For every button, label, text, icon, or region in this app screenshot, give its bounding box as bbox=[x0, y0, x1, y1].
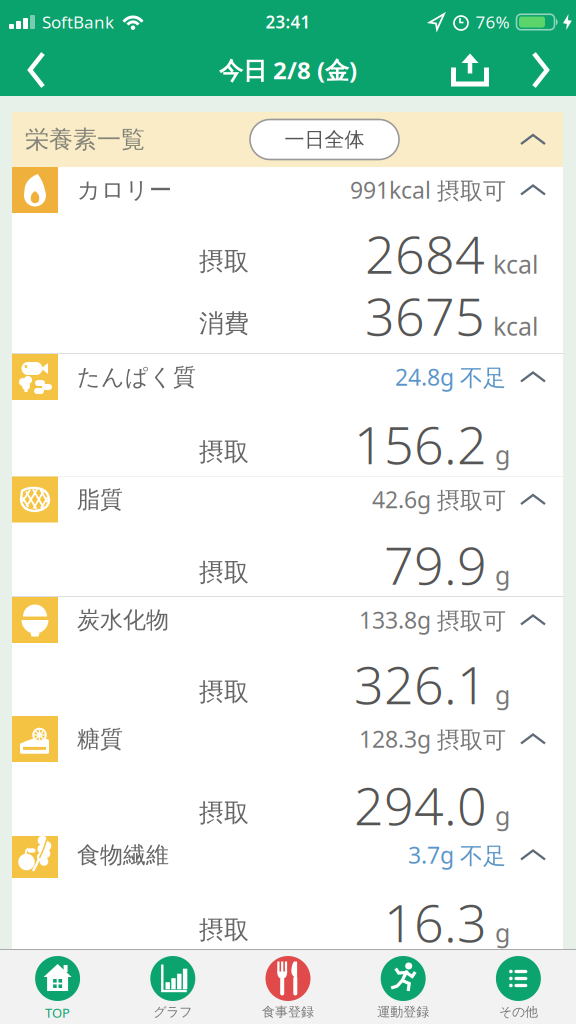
staticText: 133.8g 摂取可 bbox=[359, 605, 506, 635]
staticText: 摂取 bbox=[199, 557, 249, 588]
staticText: 食物繊維 bbox=[77, 841, 169, 869]
staticText: SoftBank bbox=[42, 11, 114, 33]
staticText: g bbox=[495, 916, 510, 949]
staticText: 991kcal 摂取可 bbox=[350, 175, 506, 205]
staticText: 294.0 bbox=[354, 770, 487, 840]
staticText: 16.3 bbox=[384, 887, 487, 957]
button[interactable]: TOP bbox=[0, 950, 115, 1021]
staticText: 摂取 bbox=[199, 914, 249, 945]
staticText: 3675 bbox=[365, 281, 485, 350]
staticText: 一日全体 bbox=[284, 127, 364, 152]
staticText: 24.8g 不足 bbox=[395, 362, 506, 392]
staticText: kcal bbox=[493, 309, 538, 343]
button[interactable]: 炭水化物 bbox=[12, 597, 563, 643]
staticText: 76% bbox=[475, 11, 509, 33]
staticText: 運動登録 bbox=[377, 1004, 429, 1020]
staticText: g bbox=[495, 799, 510, 832]
staticText: 摂取 bbox=[199, 797, 249, 828]
staticText: 今日 2/8 (金) bbox=[219, 54, 357, 86]
staticText: グラフ bbox=[153, 1004, 192, 1020]
button[interactable]: 閉じる bbox=[520, 123, 563, 155]
staticText: 炭水化物 bbox=[77, 606, 169, 634]
staticText: 糖質 bbox=[77, 725, 123, 753]
staticText: たんぱく質 bbox=[77, 363, 196, 391]
button[interactable]: たんぱく質 bbox=[12, 354, 563, 400]
staticText: g bbox=[495, 438, 510, 471]
staticText: 栄養素一覧 bbox=[25, 125, 145, 154]
button[interactable]: 食事登録 bbox=[230, 950, 346, 1020]
staticText: 79.9 bbox=[384, 530, 487, 599]
staticText: その他 bbox=[499, 1004, 538, 1020]
button[interactable]: 糖質 bbox=[12, 716, 563, 762]
button[interactable]: 次の日 bbox=[489, 44, 576, 96]
button[interactable]: グラフ bbox=[115, 950, 230, 1020]
staticText: 3.7g 不足 bbox=[408, 840, 506, 870]
button[interactable]: 共有 bbox=[451, 44, 489, 95]
staticText: 消費 bbox=[199, 308, 249, 339]
staticText: 摂取 bbox=[199, 676, 249, 707]
staticText: 2684 bbox=[365, 219, 485, 288]
staticText: 食事登録 bbox=[262, 1004, 314, 1020]
button[interactable]: カロリー bbox=[12, 167, 563, 213]
button[interactable]: 運動登録 bbox=[346, 950, 461, 1020]
staticText: 摂取 bbox=[199, 246, 249, 277]
button[interactable]: 一日全体 bbox=[250, 119, 399, 159]
staticText: g bbox=[495, 678, 510, 711]
button[interactable]: 脂質 bbox=[12, 476, 563, 522]
staticText: 23:41 bbox=[265, 11, 310, 33]
staticText: 42.6g 摂取可 bbox=[372, 484, 506, 515]
staticText: kcal bbox=[493, 247, 538, 281]
staticText: 摂取 bbox=[199, 436, 249, 467]
button[interactable]: その他 bbox=[461, 950, 576, 1020]
staticText: 脂質 bbox=[77, 485, 123, 514]
staticText: カロリー bbox=[77, 176, 172, 204]
button[interactable]: 前の日 bbox=[0, 44, 46, 96]
button[interactable]: 食物繊維 bbox=[12, 832, 563, 878]
staticText: g bbox=[495, 558, 510, 592]
staticText: 326.1 bbox=[354, 649, 487, 719]
staticText: 156.2 bbox=[354, 409, 487, 479]
staticText: 128.3g 摂取可 bbox=[359, 724, 506, 754]
staticText: TOP bbox=[45, 1004, 70, 1021]
